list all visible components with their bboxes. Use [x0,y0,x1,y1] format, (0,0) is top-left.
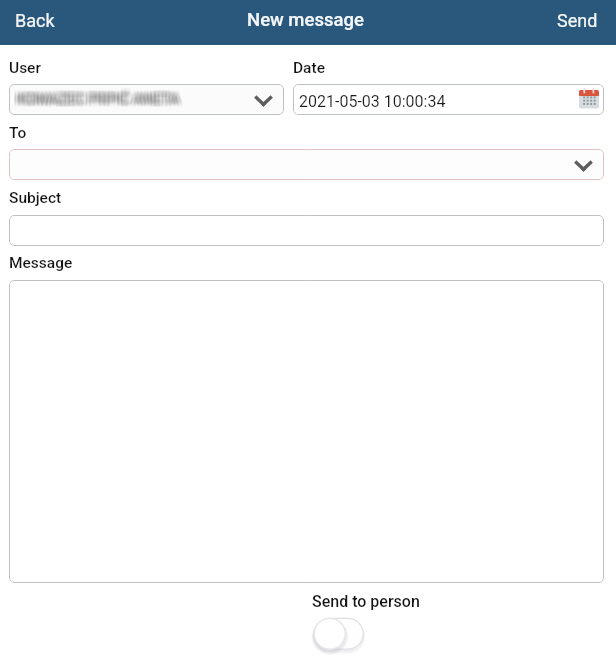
button[interactable]: Send [539,0,616,41]
staticText: KOMAZEC PRPIĆ ANETA [18,91,181,108]
staticText: KOMAZEC PRPIĆ ANETA [17,89,180,106]
staticText: New message [247,9,364,31]
button[interactable] [9,280,604,583]
staticText: KOMAZEC PRPIĆ ANETA [18,93,181,110]
staticText: KOMAZEC PRPIĆ ANETA [16,90,179,107]
staticText: KOMAZEC PRPIĆ ANETA [20,88,183,105]
staticText: KOMAZEC PRPIĆ ANETA [16,92,179,109]
staticText: Send [557,10,598,31]
staticText: KOMAZEC PRPIĆ ANETA [14,91,177,108]
staticText: Date [293,59,325,77]
staticText: KOMAZEC PRPIĆ ANETA [20,94,183,111]
staticText: KOMAZEC PRPIĆ ANETA [18,88,181,105]
staticText: Send to person [312,592,420,611]
staticText: KOMAZEC PRPIĆ ANETA [20,93,183,110]
staticText: KOMAZEC PRPIĆ ANETA [14,90,177,107]
staticText: KOMAZEC PRPIĆ ANETA [17,90,180,107]
staticText: Back [15,10,55,31]
staticText: KOMAZEC PRPIĆ ANETA [17,91,180,108]
staticText: KOMAZEC PRPIĆ ANETA [21,93,184,110]
staticText: KOMAZEC PRPIĆ ANETA [18,89,181,106]
staticText: Message [9,254,73,272]
staticText: KOMAZEC PRPIĆ ANETA [13,94,176,111]
staticText: KOMAZEC PRPIĆ ANETA [21,94,184,111]
staticText: KOMAZEC PRPIĆ ANETA [13,92,176,109]
staticText: KOMAZEC PRPIĆ ANETA [16,89,179,106]
button[interactable]: 2021-05-03 10:00:34 [293,84,604,115]
staticText: KOMAZEC PRPIĆ ANETA [16,94,179,111]
staticText: Subject [9,189,62,207]
button[interactable]: KOMAZEC PRPIĆ ANETA [9,84,284,115]
button[interactable] [9,215,604,246]
staticText: KOMAZEC PRPIĆ ANETA [16,91,179,108]
staticText: KOMAZEC PRPIĆ ANETA [18,90,181,107]
staticText: KOMAZEC PRPIĆ ANETA [21,91,184,108]
staticText: User [9,59,41,77]
button[interactable]: Send to person, off [308,613,370,655]
button[interactable] [9,149,604,180]
button[interactable]: Back [0,0,73,41]
staticText: KOMAZEC PRPIĆ ANETA [13,93,176,110]
staticText: KOMAZEC PRPIĆ ANETA [18,92,181,109]
staticText: KOMAZEC PRPIĆ ANETA [21,88,184,105]
staticText: KOMAZEC PRPIĆ ANETA [21,90,184,107]
staticText: KOMAZEC PRPIĆ ANETA [20,92,183,109]
staticText: KOMAZEC PRPIĆ ANETA [13,89,176,106]
staticText: KOMAZEC PRPIĆ ANETA [17,93,180,110]
staticText: KOMAZEC PRPIĆ ANETA [17,88,180,105]
staticText: KOMAZEC PRPIĆ ANETA [18,94,181,111]
staticText: KOMAZEC PRPIĆ ANETA [16,93,179,110]
staticText: KOMAZEC PRPIĆ ANETA [21,92,184,109]
staticText: KOMAZEC PRPIĆ ANETA [17,94,180,111]
staticText: KOMAZEC PRPIĆ ANETA [13,88,176,105]
staticText: KOMAZEC PRPIĆ ANETA [20,89,183,106]
staticText: KOMAZEC PRPIĆ ANETA [14,93,177,110]
staticText: To [9,124,27,142]
staticText: KOMAZEC PRPIĆ ANETA [14,94,177,111]
staticText: KOMAZEC PRPIĆ ANETA [21,89,184,106]
staticText: KOMAZEC PRPIĆ ANETA [13,91,176,108]
staticText: KOMAZEC PRPIĆ ANETA [17,92,180,109]
staticText: 2021-05-03 10:00:34 [299,92,446,111]
staticText: KOMAZEC PRPIĆ ANETA [16,88,179,105]
staticText: KOMAZEC PRPIĆ ANETA [14,92,177,109]
staticText: KOMAZEC PRPIĆ ANETA [14,88,177,105]
staticText: KOMAZEC PRPIĆ ANETA [20,91,183,108]
staticText: KOMAZEC PRPIĆ ANETA [14,89,177,106]
staticText: KOMAZEC PRPIĆ ANETA [20,90,183,107]
staticText: KOMAZEC PRPIĆ ANETA [13,90,176,107]
